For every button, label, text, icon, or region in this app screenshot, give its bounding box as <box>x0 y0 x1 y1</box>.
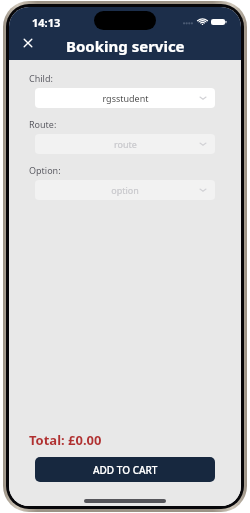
staticText: Total: £0.00 <box>29 431 102 449</box>
staticText: rgsstudent <box>102 92 149 104</box>
button[interactable]: ADD TO CART <box>35 457 215 482</box>
button[interactable]: option <box>35 180 215 200</box>
staticText: Route: <box>29 118 57 130</box>
button[interactable]: Close <box>16 31 40 55</box>
staticText: Child: <box>29 72 53 84</box>
staticText: 14:13 <box>32 15 61 30</box>
staticText: ADD TO CART <box>93 463 158 477</box>
staticText: option <box>111 184 139 196</box>
staticText: Booking service <box>66 36 185 56</box>
button[interactable]: rgsstudent <box>35 88 215 108</box>
staticText: route <box>114 138 137 150</box>
staticText: Option: <box>29 164 61 176</box>
button[interactable]: route <box>35 134 215 154</box>
